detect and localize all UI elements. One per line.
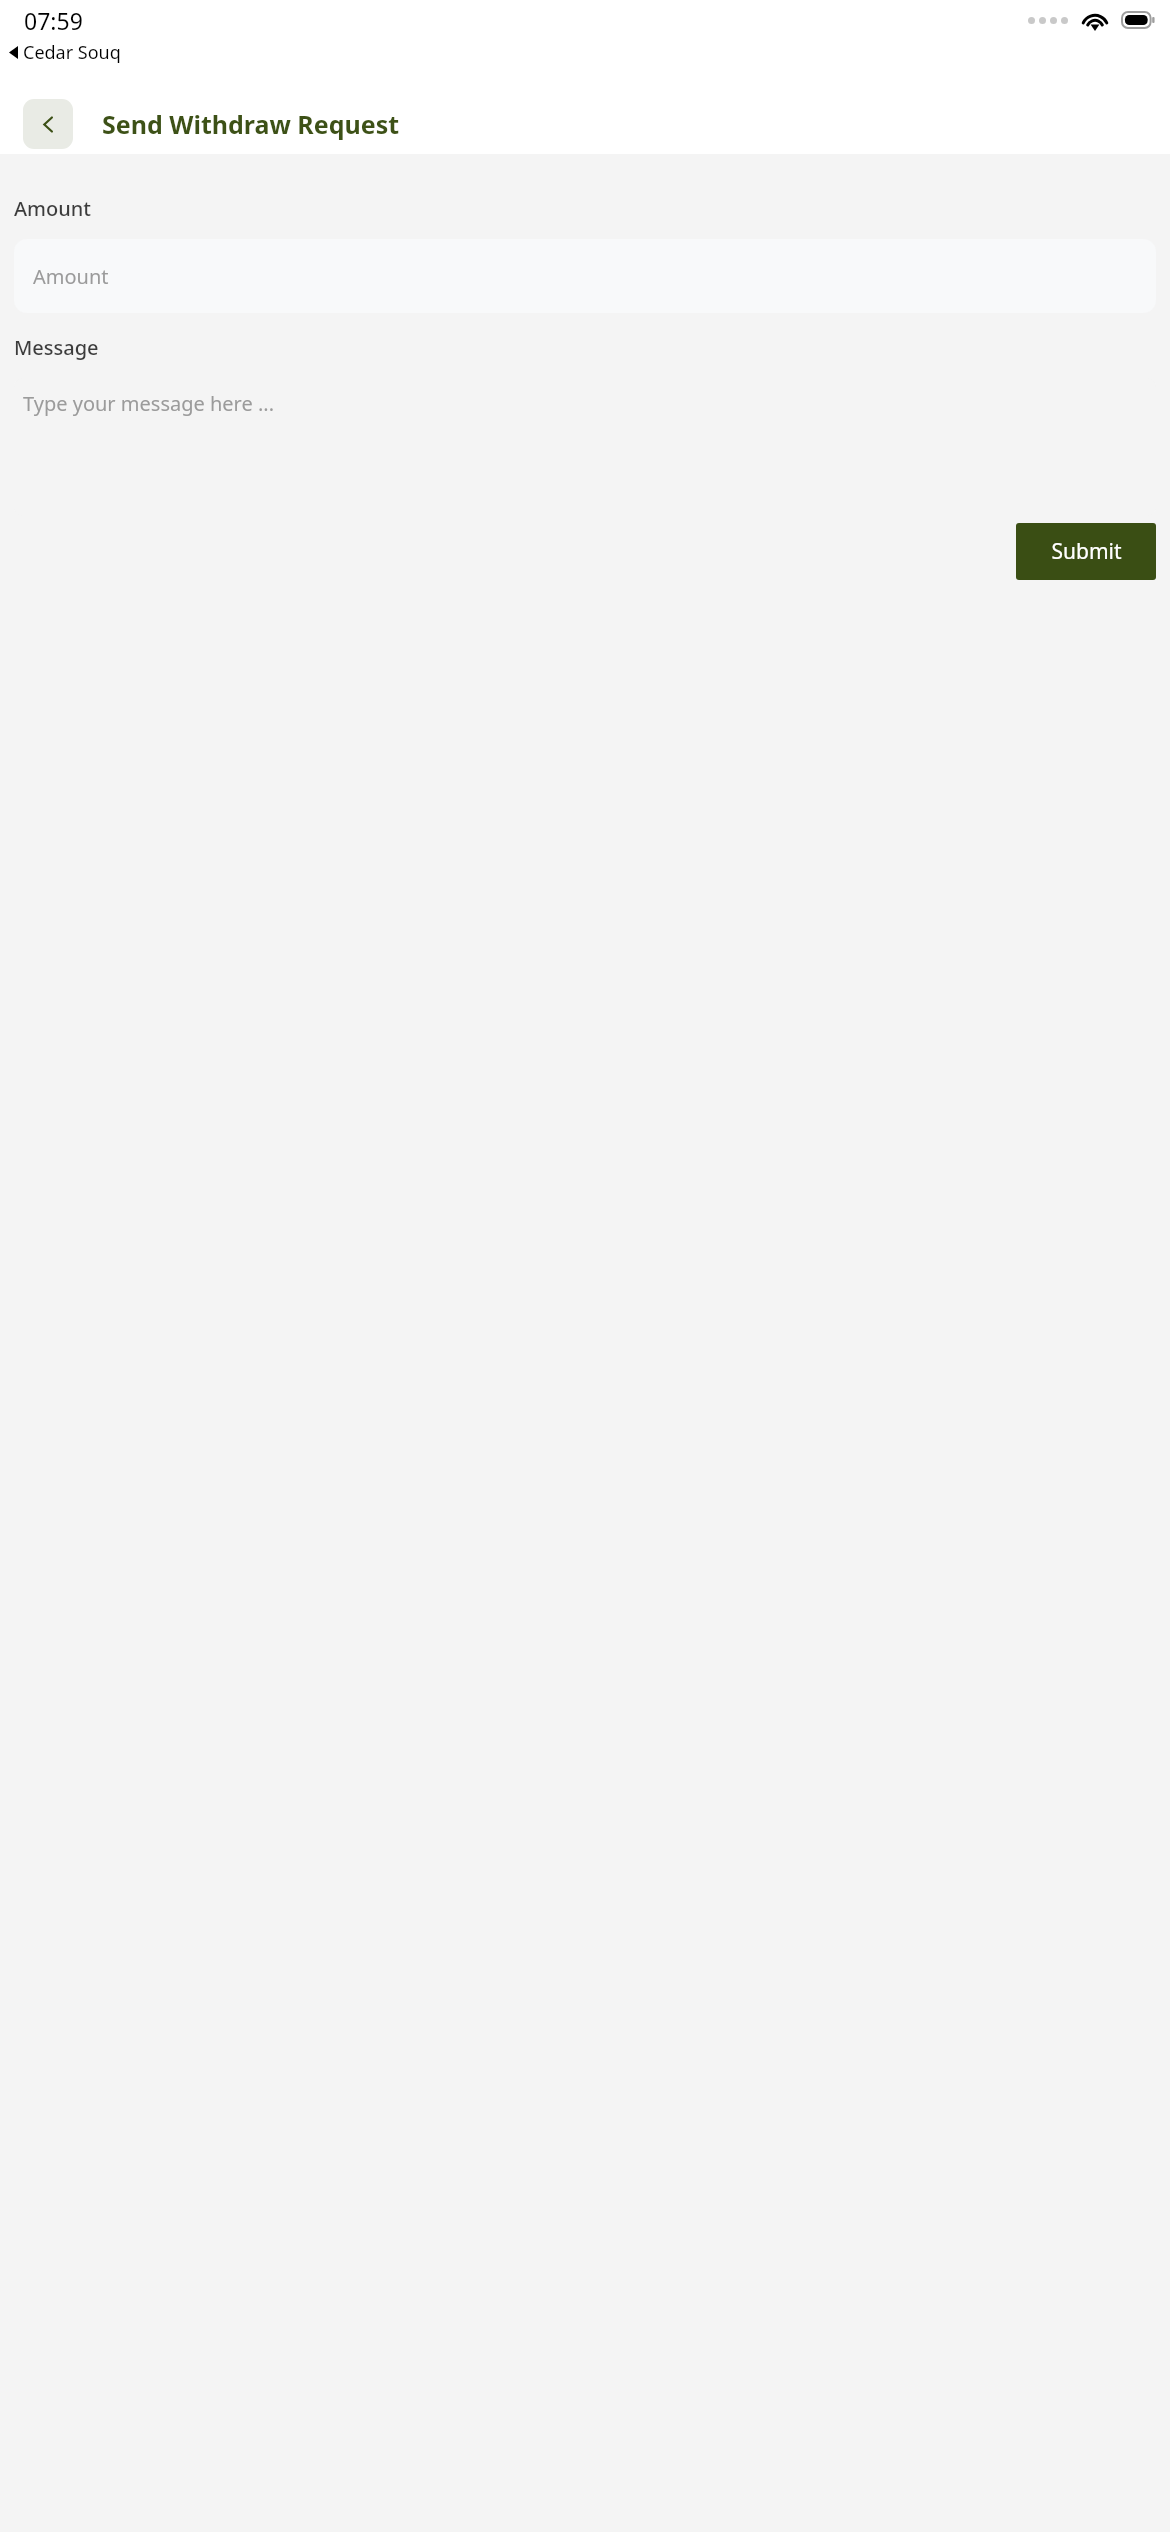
staticText: Message [14,334,99,361]
staticText: Amount [33,263,109,290]
button[interactable]: Submit [1016,523,1156,580]
button[interactable]: Back [23,99,73,149]
other: Battery [1121,11,1155,29]
staticText: Send Withdraw Request [102,107,400,141]
other: Wi-Fi [1082,10,1108,30]
staticText: Amount [14,195,91,222]
staticText: 07:59 [24,5,83,36]
button[interactable]: Type your message here ... [14,378,1156,516]
staticText: Cedar Souq [23,40,121,65]
button[interactable]: Amount [14,239,1156,313]
staticText: Type your message here ... [23,390,275,417]
staticText: Submit [1051,537,1122,566]
